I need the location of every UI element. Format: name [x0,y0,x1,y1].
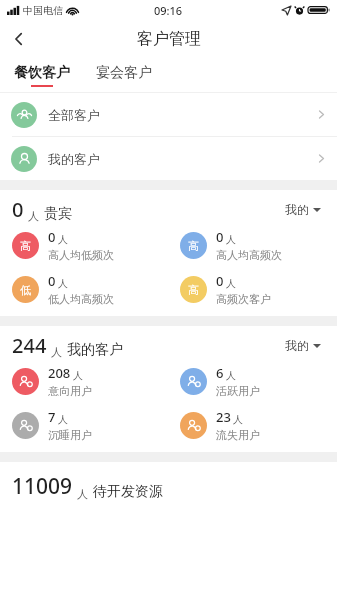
staticText: 我的 [285,338,309,353]
staticText: 我的客户 [48,151,100,167]
staticText: 餐饮客户 [14,64,70,82]
staticText: 高人均低频次 [48,248,114,262]
staticText: 活跃用户 [216,384,260,398]
staticText: 高人均高频次 [216,248,282,262]
staticText: 人 [226,233,236,246]
staticText: 0 [216,228,224,246]
staticText: 09:16 [154,3,183,18]
button[interactable]: 全部客户 [0,93,337,136]
staticText: 人 [58,233,68,246]
staticText: 待开发资源 [93,483,163,501]
staticText: 11009 [12,472,73,501]
button[interactable]: 6 [168,364,337,398]
staticText: 高 [188,239,199,253]
staticText: 人 [73,369,83,382]
staticText: 我的 [285,202,309,217]
button[interactable]: 我的 [281,334,325,357]
staticText: 贵宾 [44,205,72,223]
staticText: 人 [233,413,243,426]
button[interactable]: 高 [168,228,337,262]
staticText: 人 [226,277,236,290]
staticText: 244 [12,332,47,359]
button[interactable]: 宴会客户 [94,64,154,87]
staticText: 人 [51,345,62,359]
staticText: 人 [58,413,68,426]
staticText: 0 [12,196,24,223]
staticText: 0 [48,272,56,290]
button[interactable]: 208 [0,364,168,398]
staticText: 沉睡用户 [48,428,92,442]
staticText: 宴会客户 [96,64,152,82]
staticText: 高 [188,283,199,297]
button[interactable]: 7 [0,408,168,442]
staticText: 客户管理 [137,29,201,49]
staticText: 6 [216,364,224,382]
staticText: 流失用户 [216,428,260,442]
staticText: 高 [20,239,31,253]
staticText: 全部客户 [48,107,100,123]
staticText: 人 [77,487,88,501]
staticText: 人 [226,369,236,382]
staticText: 高频次客户 [216,292,271,306]
staticText: 0 [216,272,224,290]
staticText: 7 [48,408,56,426]
staticText: 我的客户 [67,341,123,359]
button[interactable]: 低 [0,272,168,306]
staticText: 208 [48,364,71,382]
staticText: 0 [48,228,56,246]
staticText: 人 [28,209,39,223]
staticText: 低 [20,283,31,297]
staticText: 中国电信 [23,4,63,17]
staticText: 低人均高频次 [48,292,114,306]
button[interactable]: 高 [168,272,337,306]
staticText: 23 [216,408,231,426]
button[interactable]: 高 [0,228,168,262]
staticText: 人 [58,277,68,290]
button[interactable]: 我的 [281,198,325,221]
button[interactable]: Back [0,20,38,58]
button[interactable]: 23 [168,408,337,442]
staticText: 意向用户 [48,384,92,398]
button[interactable]: 我的客户 [0,137,337,180]
button[interactable]: 餐饮客户 [12,64,72,87]
